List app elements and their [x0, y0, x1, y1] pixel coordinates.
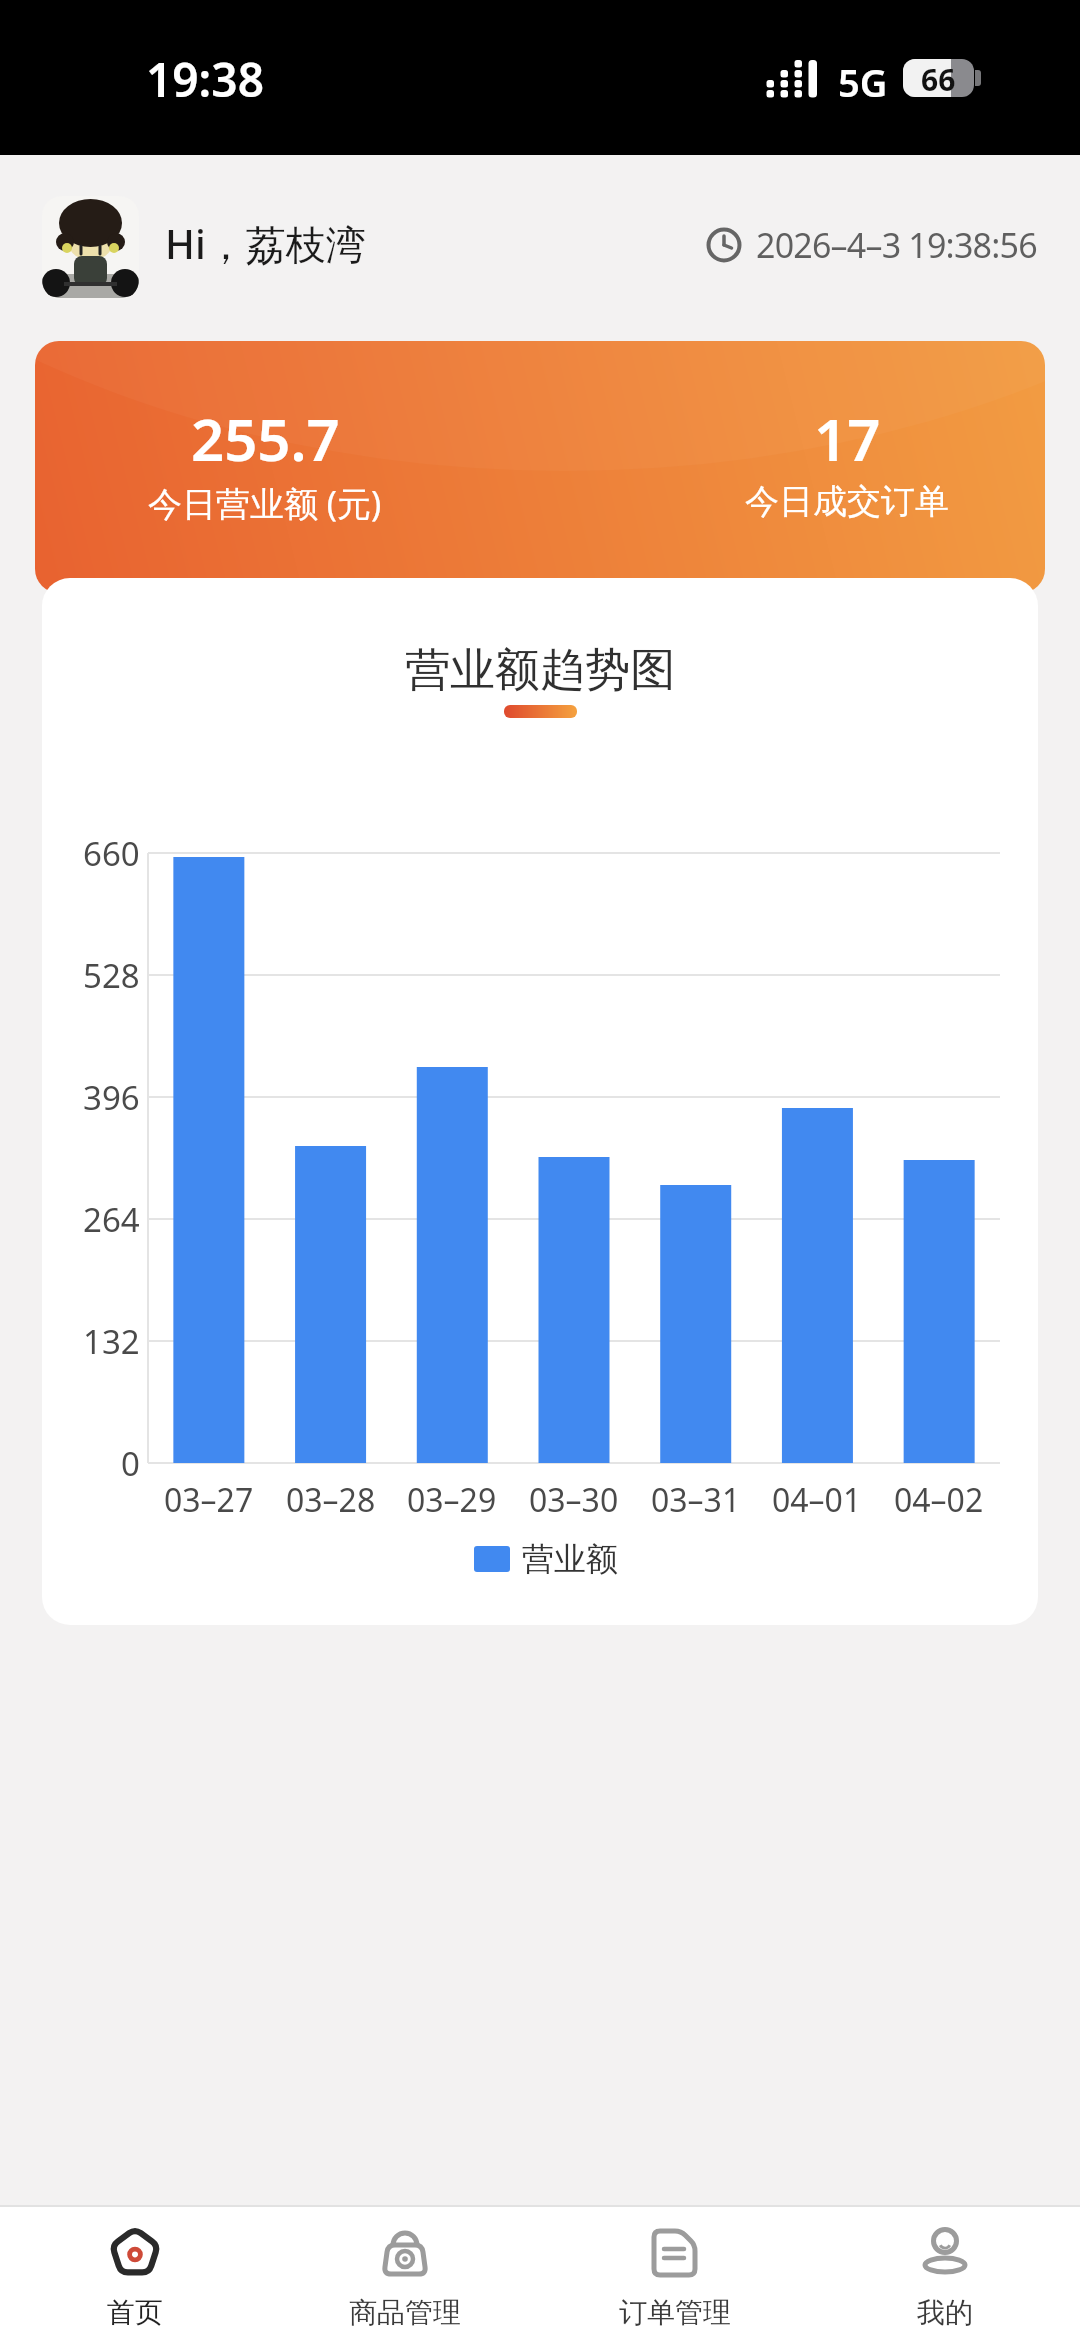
staticText: 255.7	[191, 399, 340, 478]
staticText: 04–02	[894, 1478, 984, 1522]
staticText: 0	[121, 1441, 140, 1486]
staticText: 660	[83, 831, 140, 876]
button[interactable]: 首页	[0, 2207, 270, 2346]
staticText: 03–28	[286, 1478, 376, 1522]
staticText: 264	[83, 1197, 140, 1242]
staticText: 订单管理	[619, 2295, 731, 2330]
staticText: 132	[83, 1319, 140, 1364]
staticText: 04–01	[772, 1478, 862, 1522]
button[interactable]: 商品管理	[270, 2207, 540, 2346]
staticText: 03–30	[529, 1478, 619, 1522]
staticText: 66	[921, 59, 956, 97]
staticText: 营业额趋势图	[405, 642, 675, 699]
staticText: 03–29	[407, 1478, 497, 1522]
staticText: 我的	[917, 2295, 973, 2330]
button[interactable]: 订单管理	[540, 2207, 810, 2346]
staticText: Hi，荔枝湾	[165, 216, 366, 271]
staticText: 今日营业额 (元)	[148, 480, 382, 526]
staticText: 396	[83, 1075, 140, 1120]
staticText: 528	[83, 953, 140, 998]
staticText: 03–27	[164, 1478, 254, 1522]
button[interactable]: 我的	[810, 2207, 1080, 2346]
staticText: 5G	[838, 56, 888, 108]
staticText: 19:38	[146, 48, 264, 111]
staticText: 营业额	[522, 1539, 618, 1579]
staticText: 17	[814, 399, 881, 478]
staticText: 2026–4–3 19:38:56	[756, 222, 1037, 268]
staticText: 首页	[107, 2295, 163, 2330]
staticText: 商品管理	[349, 2295, 461, 2330]
staticText: 今日成交订单	[745, 480, 949, 523]
staticText: 03–31	[651, 1478, 741, 1522]
